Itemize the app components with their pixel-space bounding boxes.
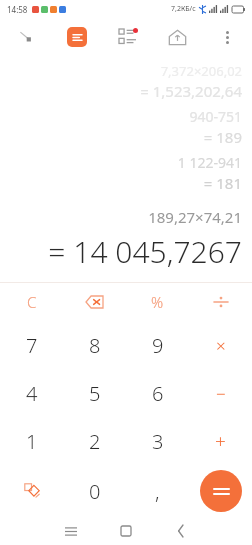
staticText: ×	[216, 334, 226, 357]
staticText: 9	[152, 332, 164, 359]
staticText: 1 122-941	[177, 153, 242, 172]
button[interactable]: Equals	[200, 470, 242, 512]
staticText: %	[151, 292, 164, 312]
button[interactable]: 7	[0, 321, 63, 369]
staticText: = 189	[203, 127, 242, 147]
button[interactable]: Back	[153, 517, 208, 545]
button[interactable]: Formulas	[0, 465, 63, 517]
button[interactable]: 1	[0, 417, 63, 465]
button[interactable]: 3	[126, 417, 189, 465]
button[interactable]: 6	[126, 369, 189, 417]
staticText: C	[27, 292, 37, 312]
button[interactable]: ×	[189, 321, 252, 369]
staticText: 7,372×206,02	[160, 62, 242, 80]
staticText: +	[215, 428, 226, 454]
button[interactable]: Home	[98, 517, 153, 545]
button[interactable]: 5	[63, 369, 126, 417]
staticText: 0	[89, 478, 101, 505]
staticText: 8	[89, 332, 101, 359]
staticText: 4	[26, 380, 38, 407]
button[interactable]: Recent apps	[43, 517, 98, 545]
staticText: 940-751	[189, 107, 242, 126]
staticText: 7,2КБ/с	[171, 4, 196, 14]
button[interactable]: More options	[202, 18, 252, 56]
button[interactable]: 9	[126, 321, 189, 369]
button[interactable]: +	[189, 417, 252, 465]
button[interactable]: 0	[63, 465, 126, 517]
button[interactable]: Tasks	[102, 18, 152, 56]
staticText: 1	[26, 428, 38, 455]
staticText: = 14 045,7267	[48, 231, 242, 272]
button[interactable]: 8	[63, 321, 126, 369]
button[interactable]: Mortgage	[152, 18, 202, 56]
staticText: = 1,523,202,64	[140, 81, 242, 101]
staticText: 189,27×74,21	[148, 207, 242, 227]
staticText: 6	[152, 380, 164, 407]
staticText: = 181	[203, 173, 242, 193]
staticText: ,	[155, 478, 160, 505]
button[interactable]: 2	[63, 417, 126, 465]
staticText: 14:58	[7, 4, 28, 15]
staticText: 2	[89, 428, 101, 455]
button[interactable]: 4	[0, 369, 63, 417]
button[interactable]: Converter	[0, 18, 51, 56]
button[interactable]: Divide	[189, 283, 252, 321]
button[interactable]: C	[0, 283, 63, 321]
button[interactable]: %	[126, 283, 189, 321]
button[interactable]: −	[189, 369, 252, 417]
button[interactable]: Calculator	[51, 18, 102, 56]
staticText: 7	[26, 332, 38, 359]
staticText: 5	[89, 380, 101, 407]
button[interactable]: ,	[126, 465, 189, 517]
staticText: −	[216, 382, 226, 405]
staticText: 3	[152, 428, 164, 455]
button[interactable]: Backspace	[63, 283, 126, 321]
